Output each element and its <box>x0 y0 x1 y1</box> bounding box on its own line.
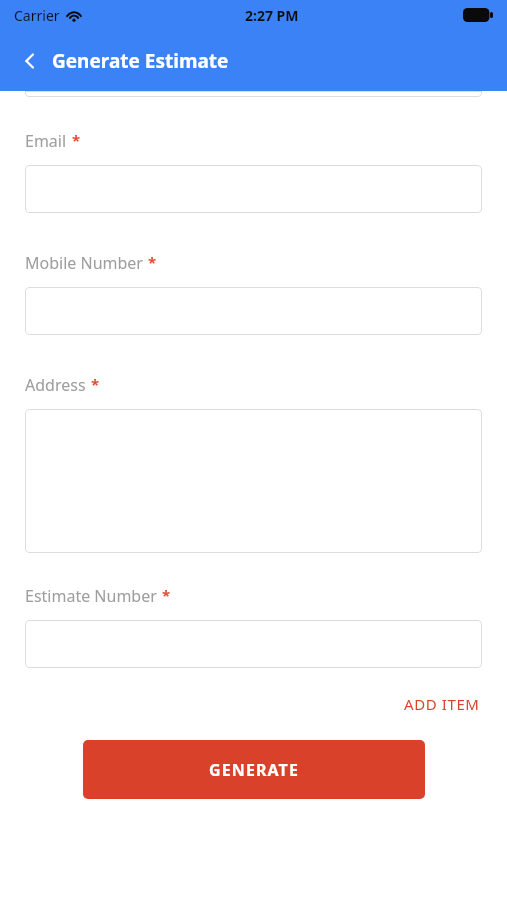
staticText: ADD ITEM <box>404 694 480 714</box>
button[interactable] <box>25 91 482 97</box>
staticText: * <box>72 130 81 150</box>
staticText: GENERATE <box>209 759 299 781</box>
button[interactable] <box>25 409 482 553</box>
staticText: Mobile Number <box>25 252 143 274</box>
staticText: Carrier <box>14 6 60 25</box>
staticText: 2:27 PM <box>245 6 299 25</box>
button[interactable] <box>25 287 482 335</box>
staticText: * <box>91 374 100 394</box>
button[interactable] <box>25 165 482 213</box>
staticText: * <box>148 252 157 272</box>
staticText: Generate Estimate <box>52 48 229 74</box>
button[interactable] <box>25 620 482 668</box>
staticText: Email <box>25 130 67 152</box>
staticText: * <box>162 585 171 605</box>
button[interactable]: Back <box>16 47 44 75</box>
button[interactable]: GENERATE <box>83 740 425 799</box>
staticText: Address <box>25 374 86 396</box>
staticText: Estimate Number <box>25 585 157 607</box>
button[interactable]: ADD ITEM <box>402 690 482 718</box>
